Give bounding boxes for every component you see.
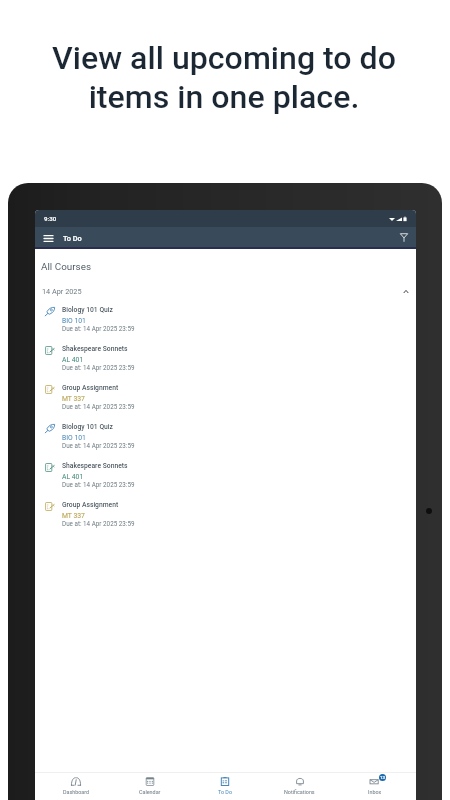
button[interactable]: 13 xyxy=(337,773,412,800)
staticText: View all upcoming to do items in one pla… xyxy=(52,39,396,115)
staticText: Due at: 14 Apr 2025 23:59 xyxy=(62,325,135,332)
staticText: AL 401 xyxy=(62,356,84,364)
staticText: Group Assignment xyxy=(62,384,119,392)
staticText: Due at: 14 Apr 2025 23:59 xyxy=(62,520,135,527)
button[interactable]: Filter xyxy=(392,227,416,247)
staticText: Biology 101 Quiz xyxy=(62,306,113,314)
staticText: To Do xyxy=(218,789,232,795)
button[interactable]: Dashboard xyxy=(39,773,113,800)
staticText: Dashboard xyxy=(63,789,90,795)
button[interactable]: Group Assignment xyxy=(35,496,416,535)
staticText: 9:30 xyxy=(44,215,57,222)
button[interactable]: Shakespeare Sonnets xyxy=(35,457,416,496)
button[interactable]: Notifications xyxy=(262,773,337,800)
staticText: Notifications xyxy=(284,789,315,795)
staticText: To Do xyxy=(63,234,82,243)
staticText: Due at: 14 Apr 2025 23:59 xyxy=(62,403,135,410)
staticText: BIO 101 xyxy=(62,434,86,442)
staticText: Group Assignment xyxy=(62,501,119,509)
staticText: 14 Apr 2025 xyxy=(42,287,82,296)
staticText: Due at: 14 Apr 2025 23:59 xyxy=(62,442,135,449)
staticText: Due at: 14 Apr 2025 23:59 xyxy=(62,481,135,488)
staticText: Due at: 14 Apr 2025 23:59 xyxy=(62,364,135,371)
staticText: MT 337 xyxy=(62,512,85,520)
staticText: Calendar xyxy=(139,789,161,795)
staticText: 13 xyxy=(380,775,385,780)
staticText: Biology 101 Quiz xyxy=(62,423,113,431)
staticText: Shakespeare Sonnets xyxy=(62,345,128,353)
button[interactable]: To Do xyxy=(187,773,262,800)
staticText: AL 401 xyxy=(62,473,84,481)
staticText: Shakespeare Sonnets xyxy=(62,462,128,470)
button[interactable]: Biology 101 Quiz xyxy=(35,418,416,457)
staticText: All Courses xyxy=(41,261,92,273)
button[interactable]: 14 Apr 2025 xyxy=(35,285,416,298)
button[interactable]: Biology 101 Quiz xyxy=(35,301,416,340)
button[interactable]: Open navigation menu xyxy=(35,227,62,247)
staticText: BIO 101 xyxy=(62,317,86,325)
button[interactable]: Group Assignment xyxy=(35,379,416,418)
button[interactable]: Shakespeare Sonnets xyxy=(35,340,416,379)
staticText: Inbox xyxy=(368,789,382,795)
staticText: MT 337 xyxy=(62,395,85,403)
button[interactable]: Calendar xyxy=(113,773,187,800)
